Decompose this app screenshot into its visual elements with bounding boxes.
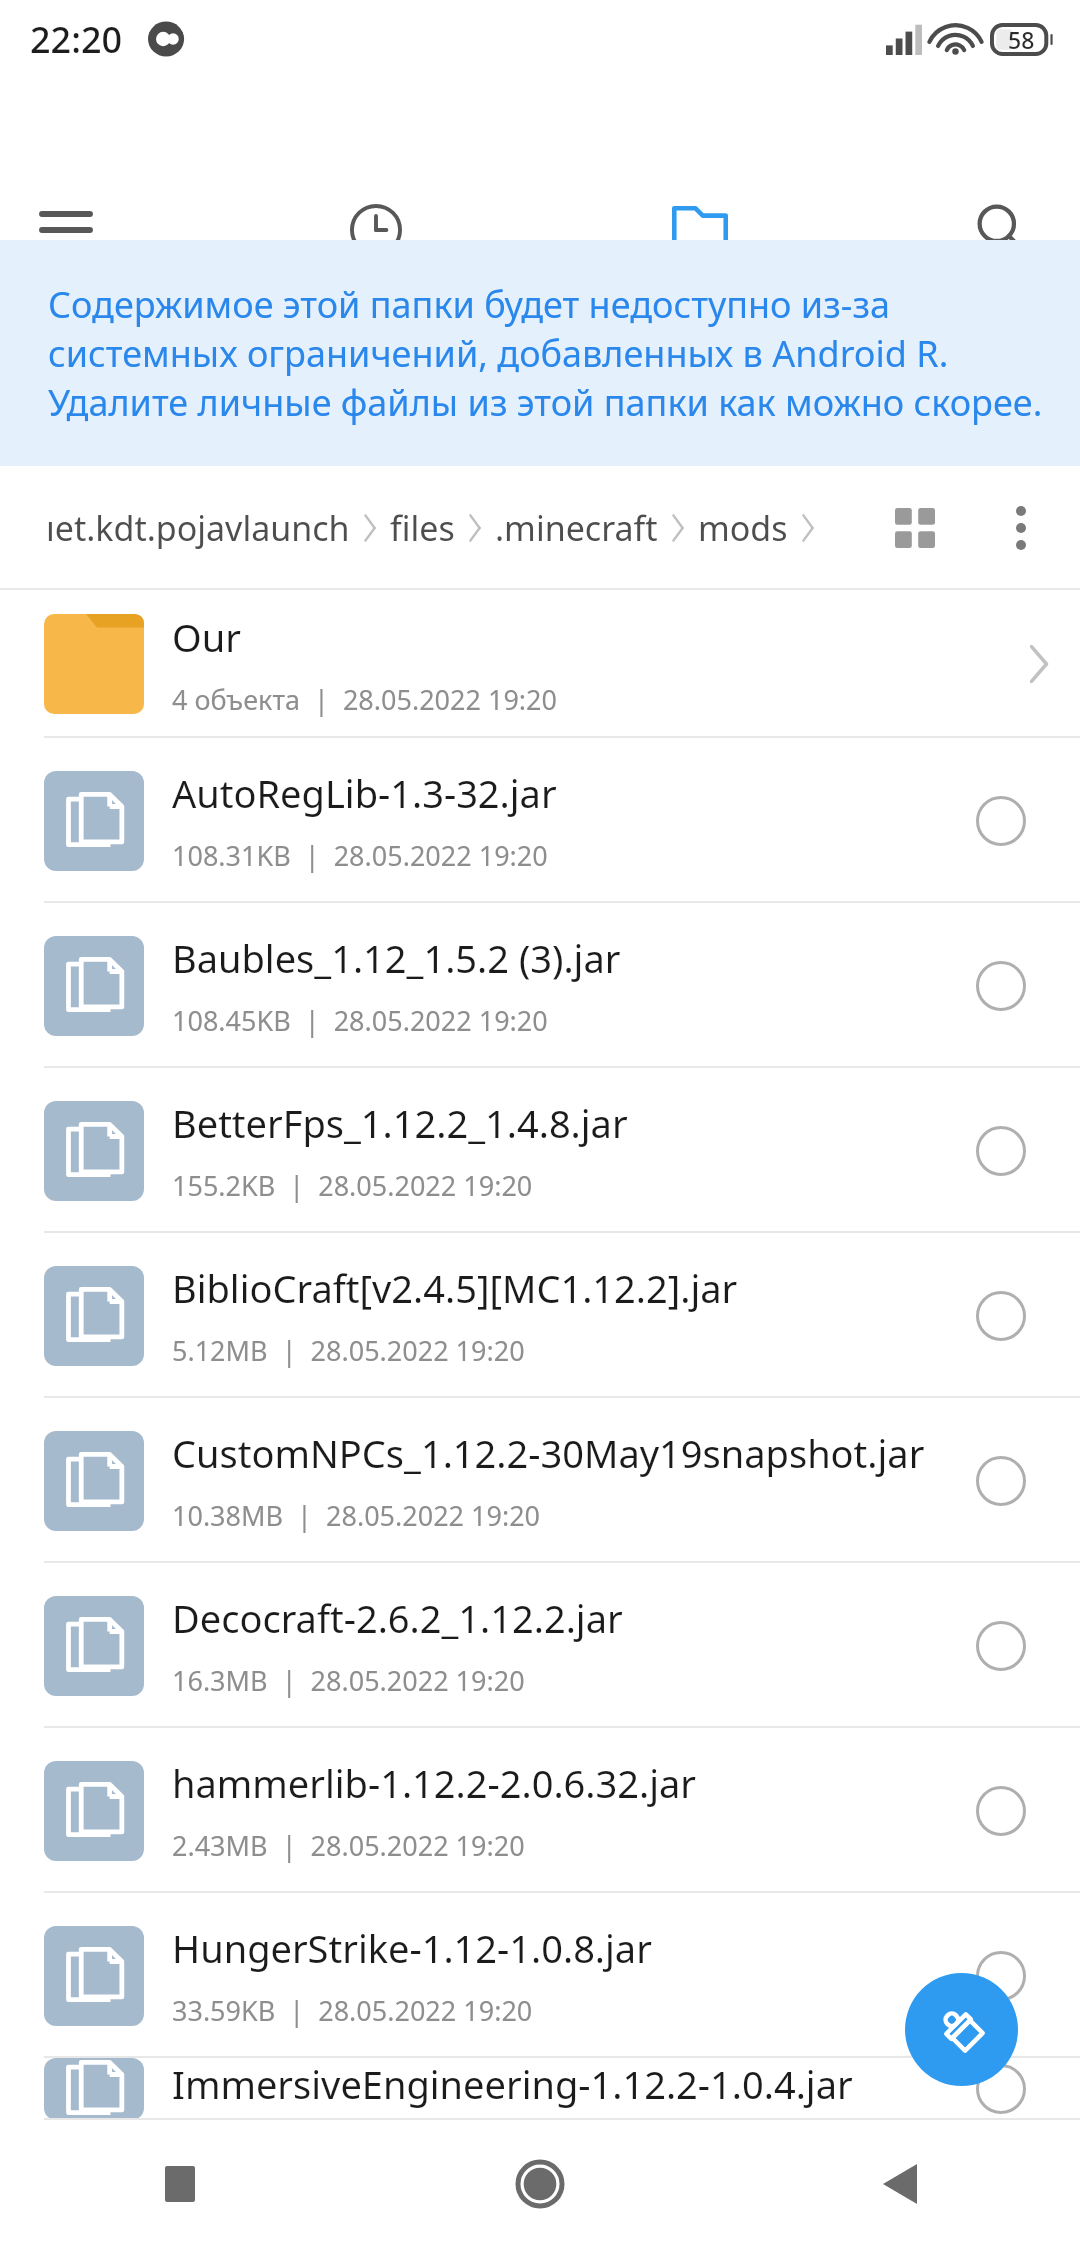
button[interactable]: Recent: [324, 178, 428, 282]
staticText: BiblioCraft[v2.4.5][MC1.12.2].jar: [172, 1262, 738, 1314]
button[interactable]: Menu: [14, 178, 118, 282]
button[interactable]: Clean up: [905, 1973, 1018, 2086]
staticText: 2.43MB | 28.05.2022 19:20: [172, 1827, 525, 1864]
staticText: 5.12MB | 28.05.2022 19:20: [172, 1332, 525, 1369]
button[interactable]: ImmersiveEngineering-1.12.2-1.0.4.jar: [0, 2058, 1080, 2120]
button[interactable]: BetterFps_1.12.2_1.4.8.jar: [0, 1068, 1080, 1233]
staticText: системных ограничений, добавленных в And…: [48, 329, 949, 378]
staticText: 108.45KB | 28.05.2022 19:20: [172, 1002, 548, 1039]
button[interactable]: Select ImmersiveEngineering-1.12.2-1.0.4…: [966, 2058, 1036, 2120]
button[interactable]: Search: [950, 178, 1054, 282]
button[interactable]: CustomNPCs_1.12.2-30May19snapshot.jar: [0, 1398, 1080, 1563]
button[interactable]: Files: [648, 178, 752, 282]
button[interactable]: AutoRegLib-1.3-32.jar: [0, 738, 1080, 903]
button[interactable]: Grid view: [872, 485, 958, 571]
staticText: 10.38MB | 28.05.2022 19:20: [172, 1497, 541, 1534]
staticText: BetterFps_1.12.2_1.4.8.jar: [172, 1097, 628, 1149]
button[interactable]: Select hammerlib-1.12.2-2.0.6.32.jar: [966, 1776, 1036, 1846]
button[interactable]: Back: [720, 2120, 1080, 2248]
staticText: 58: [1008, 24, 1035, 55]
staticText: Our: [172, 611, 241, 663]
button[interactable]: Select Decocraft-2.6.2_1.12.2.jar: [966, 1611, 1036, 1681]
button[interactable]: HungerStrike-1.12-1.0.8.jar: [0, 1893, 1080, 2058]
staticText: Удалите личные файлы из этой папки как м…: [48, 378, 1043, 427]
button[interactable]: Home: [360, 2120, 720, 2248]
staticText: 155.2KB | 28.05.2022 19:20: [172, 1167, 533, 1204]
staticText: hammerlib-1.12.2-2.0.6.32.jar: [172, 1757, 696, 1809]
button[interactable]: Select HungerStrike-1.12-1.0.8.jar: [966, 1941, 1036, 2011]
button[interactable]: BiblioCraft[v2.4.5][MC1.12.2].jar: [0, 1233, 1080, 1398]
button[interactable]: ıet.kdt.pojavlaunch: [46, 505, 350, 551]
staticText: Baubles_1.12_1.5.2 (3).jar: [172, 932, 621, 984]
button[interactable]: Decocraft-2.6.2_1.12.2.jar: [0, 1563, 1080, 1728]
button[interactable]: Select BetterFps_1.12.2_1.4.8.jar: [966, 1116, 1036, 1186]
button[interactable]: Select BiblioCraft[v2.4.5][MC1.12.2].jar: [966, 1281, 1036, 1351]
button[interactable]: .minecraft: [495, 505, 658, 551]
staticText: Decocraft-2.6.2_1.12.2.jar: [172, 1592, 623, 1644]
staticText: 33.59KB | 28.05.2022 19:20: [172, 1992, 533, 2029]
button[interactable]: Baubles_1.12_1.5.2 (3).jar: [0, 903, 1080, 1068]
staticText: HungerStrike-1.12-1.0.8.jar: [172, 1922, 652, 1974]
staticText: CustomNPCs_1.12.2-30May19snapshot.jar: [172, 1427, 925, 1479]
staticText: 4 объекта | 28.05.2022 19:20: [172, 681, 557, 718]
staticText: Содержимое этой папки будет недоступно и…: [48, 280, 890, 329]
staticText: ImmersiveEngineering-1.12.2-1.0.4.jar: [172, 2058, 853, 2110]
staticText: 16.3MB | 28.05.2022 19:20: [172, 1662, 525, 1699]
button[interactable]: Select CustomNPCs_1.12.2-30May19snapshot…: [966, 1446, 1036, 1516]
button[interactable]: Recent apps: [0, 2120, 360, 2248]
button[interactable]: Select AutoRegLib-1.3-32.jar: [966, 786, 1036, 856]
button[interactable]: Select Baubles_1.12_1.5.2 (3).jar: [966, 951, 1036, 1021]
button[interactable]: Our: [0, 590, 1080, 738]
staticText: AutoRegLib-1.3-32.jar: [172, 767, 557, 819]
button[interactable]: hammerlib-1.12.2-2.0.6.32.jar: [0, 1728, 1080, 1893]
button[interactable]: More options: [978, 485, 1064, 571]
staticText: 108.31KB | 28.05.2022 19:20: [172, 837, 548, 874]
button[interactable]: files: [390, 505, 455, 551]
staticText: 22:20: [30, 15, 123, 64]
button[interactable]: mods: [698, 505, 788, 551]
